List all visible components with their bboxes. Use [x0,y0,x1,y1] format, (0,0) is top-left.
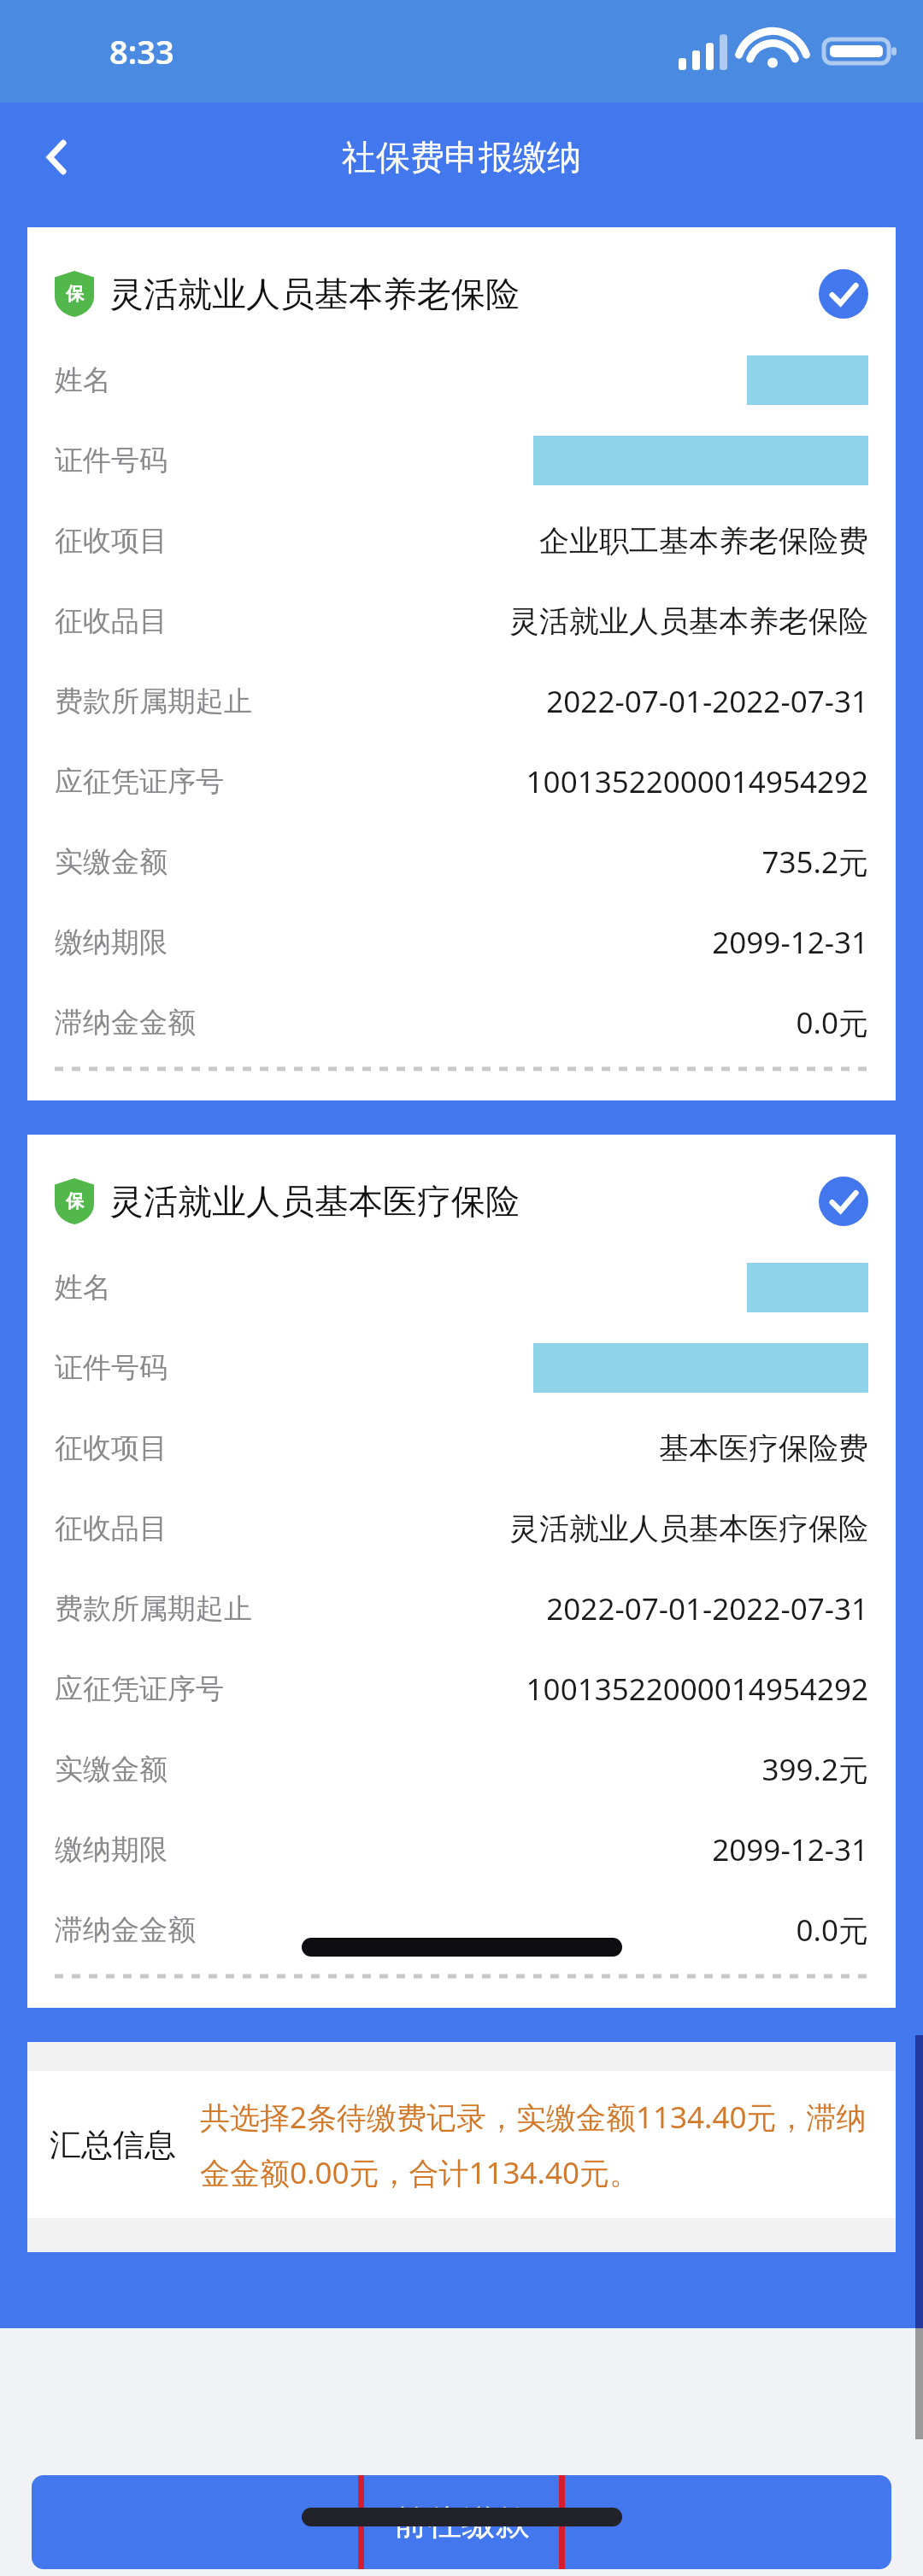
staticText: 实缴金额 [55,844,168,880]
staticText: 滞纳金金额 [55,1005,196,1041]
staticText: 企业职工基本养老保险费 [539,522,868,560]
staticText: 缴纳期限 [55,924,168,960]
staticText: 费款所属期起止 [55,1591,252,1627]
staticText: 2099-12-31 [712,922,868,963]
staticText: 保 [66,1190,84,1212]
staticText: 2022-07-01-2022-07-31 [546,1588,868,1629]
staticText: 基本医疗保险费 [659,1429,868,1467]
staticText: 灵活就业人员基本养老保险 [509,602,868,640]
staticText: 0.0元 [796,1910,868,1951]
staticText: 0.0元 [796,1002,868,1043]
staticText: 费款所属期起止 [55,684,252,719]
staticText: 应征凭证序号 [55,764,224,800]
staticText: 10013522000014954292 [526,1669,868,1710]
button[interactable]: Selected [819,269,868,319]
staticText: 共选择2条待缴费记录，实缴金额1134.40元，滞纳金金额0.00元，合计113… [200,2097,873,2192]
staticText: 实缴金额 [55,1752,168,1787]
staticText: 证件号码 [55,443,168,478]
staticText: 社保费申报缴纳 [342,136,581,179]
staticText: 应征凭证序号 [55,1671,224,1707]
button[interactable]: 保 [55,253,868,335]
staticText: 汇总信息 [50,2125,176,2165]
staticText: 缴纳期限 [55,1832,168,1868]
staticText: 姓名 [55,362,111,398]
staticText: 2099-12-31 [712,1829,868,1870]
staticText: 征收项目 [55,523,168,559]
staticText: 证件号码 [55,1350,168,1386]
button[interactable]: Back [19,119,96,196]
staticText: 8:33 [109,29,174,73]
button[interactable]: 保 [55,1160,868,1242]
staticText: 10013522000014954292 [526,761,868,802]
staticText: 灵活就业人员基本医疗保险 [509,1510,868,1547]
staticText: 征收品目 [55,1511,168,1546]
staticText: 姓名 [55,1270,111,1306]
staticText: 735.2元 [761,842,868,883]
staticText: 滞纳金金额 [55,1912,196,1948]
staticText: 灵活就业人员基本医疗保险 [109,1180,520,1223]
staticText: 征收品目 [55,603,168,639]
staticText: 灵活就业人员基本养老保险 [109,273,520,315]
staticText: 2022-07-01-2022-07-31 [546,681,868,722]
staticText: 征收项目 [55,1430,168,1466]
staticText: 前往缴款 [393,2501,530,2544]
staticText: 保 [66,283,84,305]
button[interactable]: 前往缴款 [32,2475,891,2569]
button[interactable]: Selected [819,1177,868,1226]
staticText: 399.2元 [761,1749,868,1790]
